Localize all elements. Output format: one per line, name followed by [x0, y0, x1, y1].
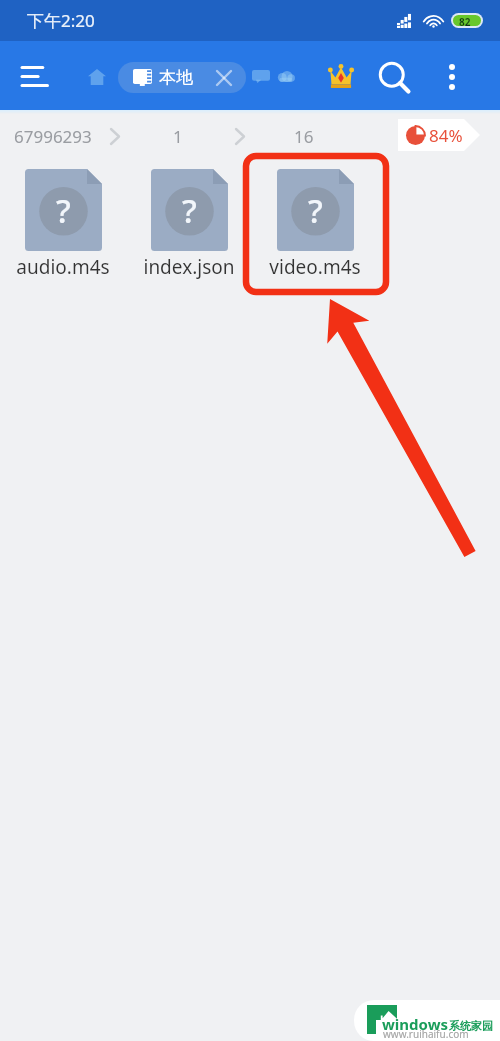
staticText: 82	[459, 15, 471, 26]
button[interactable]: Menu	[11, 52, 59, 100]
button[interactable]: Messages	[243, 58, 279, 94]
button[interactable]: ?	[126, 169, 252, 280]
staticText: audio.m4s	[16, 254, 110, 280]
button[interactable]: 67996293	[14, 125, 92, 148]
button[interactable]: 本地	[118, 62, 246, 93]
button[interactable]: ?	[0, 169, 126, 280]
staticText: video.m4s	[269, 254, 361, 280]
staticText: index.json	[143, 254, 235, 280]
button[interactable]: 84%	[398, 119, 480, 151]
button[interactable]: 1	[173, 125, 183, 148]
button[interactable]: Home	[80, 60, 114, 94]
staticText: ?	[308, 188, 323, 233]
button[interactable]: ?	[252, 169, 378, 280]
staticText: 下午2:20	[27, 9, 95, 32]
staticText: 1	[173, 125, 183, 148]
button[interactable]: VIP	[321, 56, 361, 96]
staticText: 16	[294, 125, 314, 148]
staticText: 84%	[429, 124, 463, 147]
button[interactable]: More options	[434, 59, 470, 95]
button[interactable]: Search	[372, 55, 416, 99]
staticText: windows	[382, 1014, 449, 1034]
staticText: ?	[56, 188, 71, 233]
staticText: 系统家园	[449, 1019, 493, 1033]
button[interactable]: 16	[294, 125, 314, 148]
staticText: 67996293	[14, 125, 92, 148]
staticText: 本地	[159, 67, 193, 88]
button[interactable]: Cloud	[268, 59, 302, 93]
staticText: www.ruihaifu.com	[383, 1027, 469, 1041]
staticText: ?	[182, 188, 197, 233]
